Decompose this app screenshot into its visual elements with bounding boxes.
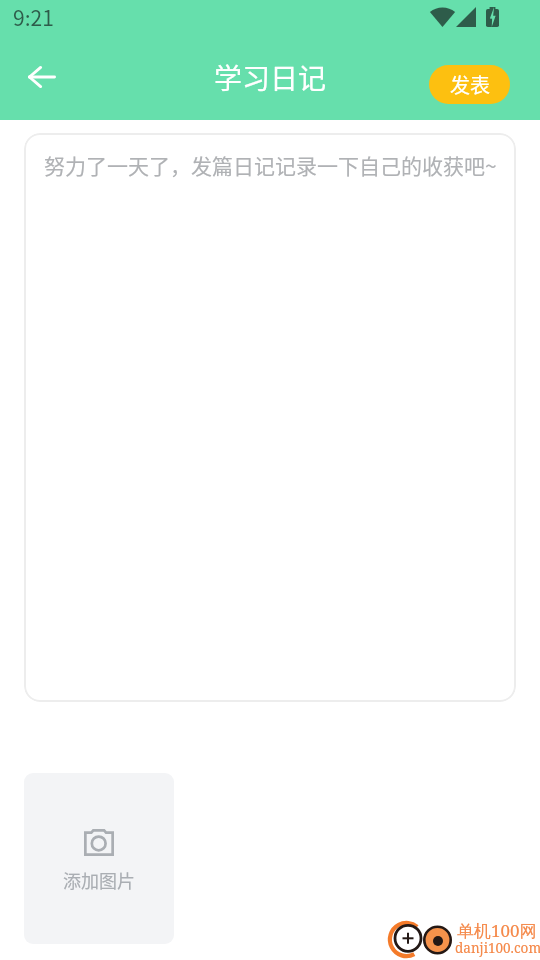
staticText: 努力了一天了，发篇日记记录一下自己的收获吧~ bbox=[44, 150, 497, 180]
staticText: 单机100网 bbox=[457, 919, 537, 942]
staticText: 添加图片 bbox=[63, 867, 135, 893]
staticText: 9:21 bbox=[13, 2, 54, 32]
button[interactable]: 发表 bbox=[429, 65, 510, 104]
staticText: 学习日记 bbox=[214, 57, 327, 98]
button[interactable]: Back bbox=[18, 53, 66, 101]
staticText: 发表 bbox=[450, 70, 490, 99]
button[interactable]: 努力了一天了，发篇日记记录一下自己的收获吧~ bbox=[24, 133, 516, 702]
staticText: danji100.com bbox=[455, 939, 540, 957]
button[interactable]: 添加图片 bbox=[24, 773, 174, 944]
